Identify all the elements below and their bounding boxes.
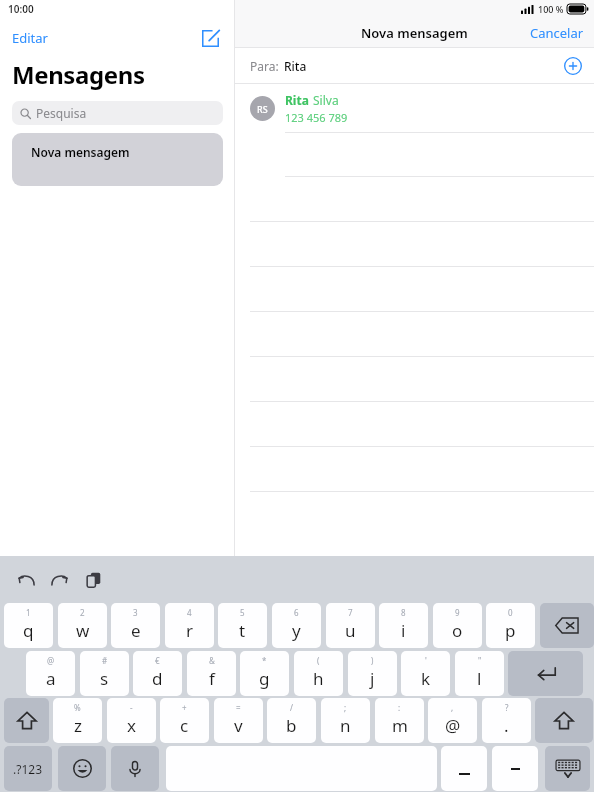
staticText: @ bbox=[445, 714, 461, 737]
staticText: ? bbox=[505, 702, 509, 713]
button[interactable]: Ditado bbox=[111, 746, 159, 791]
staticText: Para: bbox=[250, 58, 279, 74]
button[interactable]: Colar bbox=[78, 564, 110, 596]
button[interactable]: .?123 bbox=[4, 746, 52, 791]
staticText: - bbox=[130, 702, 133, 713]
staticText: l bbox=[477, 667, 482, 690]
staticText: = bbox=[236, 702, 241, 713]
staticText: RS bbox=[257, 103, 268, 115]
button[interactable]: Cancelar bbox=[520, 20, 594, 46]
button[interactable]: ; bbox=[321, 698, 370, 743]
staticText: i bbox=[401, 619, 406, 642]
button[interactable]: Apagar bbox=[540, 603, 594, 648]
staticText: Silva bbox=[313, 92, 339, 108]
button[interactable]: ) bbox=[348, 651, 397, 696]
button[interactable]: 0 bbox=[486, 603, 535, 648]
staticText: x bbox=[127, 714, 136, 737]
staticText: f bbox=[209, 667, 215, 690]
button[interactable]: ? bbox=[482, 698, 531, 743]
button[interactable]: 8 bbox=[379, 603, 428, 648]
button[interactable]: 9 bbox=[433, 603, 482, 648]
button[interactable]: Editar bbox=[0, 26, 60, 50]
staticText: 5 bbox=[240, 607, 245, 618]
staticText: Cancelar bbox=[530, 24, 584, 42]
staticText: 1 bbox=[26, 607, 31, 618]
staticText: t bbox=[239, 619, 246, 642]
staticText: Rita bbox=[285, 92, 309, 108]
staticText: : bbox=[398, 702, 401, 713]
button[interactable]: " bbox=[455, 651, 504, 696]
staticText: 7 bbox=[348, 607, 353, 618]
button[interactable]: 5 bbox=[218, 603, 267, 648]
button[interactable]: 6 bbox=[272, 603, 321, 648]
staticText: , bbox=[451, 702, 454, 713]
button[interactable]: 1 bbox=[4, 603, 53, 648]
staticText: € bbox=[155, 655, 160, 666]
button[interactable]: Adicionar contacto bbox=[560, 53, 586, 79]
button[interactable]: ( bbox=[294, 651, 343, 696]
button[interactable]: = bbox=[214, 698, 263, 743]
staticText: e bbox=[131, 619, 141, 642]
staticText: Rita bbox=[284, 58, 307, 74]
button[interactable]: 2 bbox=[58, 603, 107, 648]
button[interactable]: Ocultar teclado bbox=[545, 746, 590, 791]
staticText: 8 bbox=[401, 607, 406, 618]
staticText: r bbox=[186, 619, 194, 642]
staticText: j bbox=[370, 667, 375, 690]
button[interactable]: Nova mensagem bbox=[12, 133, 223, 186]
button[interactable]: Anular bbox=[10, 564, 42, 596]
button[interactable]: # bbox=[80, 651, 129, 696]
staticText: " bbox=[478, 655, 482, 666]
staticText: y bbox=[292, 619, 301, 642]
staticText: q bbox=[23, 619, 34, 642]
staticText: % bbox=[74, 702, 81, 713]
button[interactable]: Nova mensagem bbox=[193, 24, 227, 52]
button[interactable]: : bbox=[375, 698, 424, 743]
button[interactable]: * bbox=[240, 651, 289, 696]
button[interactable]: % bbox=[53, 698, 102, 743]
button[interactable]: Underscore bbox=[441, 746, 487, 791]
staticText: 4 bbox=[187, 607, 192, 618]
button[interactable]: & bbox=[187, 651, 236, 696]
staticText: g bbox=[259, 667, 270, 690]
button[interactable]: Enter bbox=[508, 651, 583, 696]
staticText: ) bbox=[371, 655, 374, 666]
button[interactable]: Hífen bbox=[492, 746, 538, 791]
staticText: n bbox=[340, 714, 351, 737]
button[interactable]: , bbox=[428, 698, 477, 743]
button[interactable]: @ bbox=[26, 651, 75, 696]
staticText: 100 % bbox=[538, 3, 564, 15]
staticText: 9 bbox=[455, 607, 460, 618]
button[interactable]: € bbox=[133, 651, 182, 696]
button[interactable]: + bbox=[160, 698, 209, 743]
staticText: ; bbox=[344, 702, 347, 713]
staticText: * bbox=[262, 655, 267, 666]
staticText: & bbox=[209, 655, 215, 666]
button[interactable]: Emoji bbox=[58, 746, 106, 791]
staticText: Pesquisa bbox=[36, 105, 87, 121]
staticText: ' bbox=[425, 655, 427, 666]
staticText: # bbox=[102, 655, 108, 666]
button[interactable]: Shift bbox=[535, 698, 593, 743]
staticText: 3 bbox=[133, 607, 138, 618]
staticText: 2 bbox=[80, 607, 85, 618]
staticText: / bbox=[290, 702, 293, 713]
staticText: 0 bbox=[508, 607, 513, 618]
staticText: s bbox=[100, 667, 109, 690]
button[interactable]: ' bbox=[401, 651, 450, 696]
button[interactable]: 7 bbox=[326, 603, 375, 648]
button[interactable]: Shift bbox=[4, 698, 49, 743]
staticText: a bbox=[46, 667, 56, 690]
button[interactable]: RS bbox=[235, 84, 594, 132]
button[interactable]: / bbox=[267, 698, 316, 743]
staticText: p bbox=[505, 619, 516, 642]
staticText: . bbox=[504, 714, 509, 737]
button[interactable]: Pesquisa bbox=[12, 101, 223, 125]
button[interactable]: 4 bbox=[165, 603, 214, 648]
button[interactable]: - bbox=[107, 698, 156, 743]
staticText: k bbox=[421, 667, 431, 690]
button[interactable]: Refazer bbox=[44, 564, 76, 596]
button[interactable]: 3 bbox=[111, 603, 160, 648]
staticText: @ bbox=[47, 655, 55, 666]
